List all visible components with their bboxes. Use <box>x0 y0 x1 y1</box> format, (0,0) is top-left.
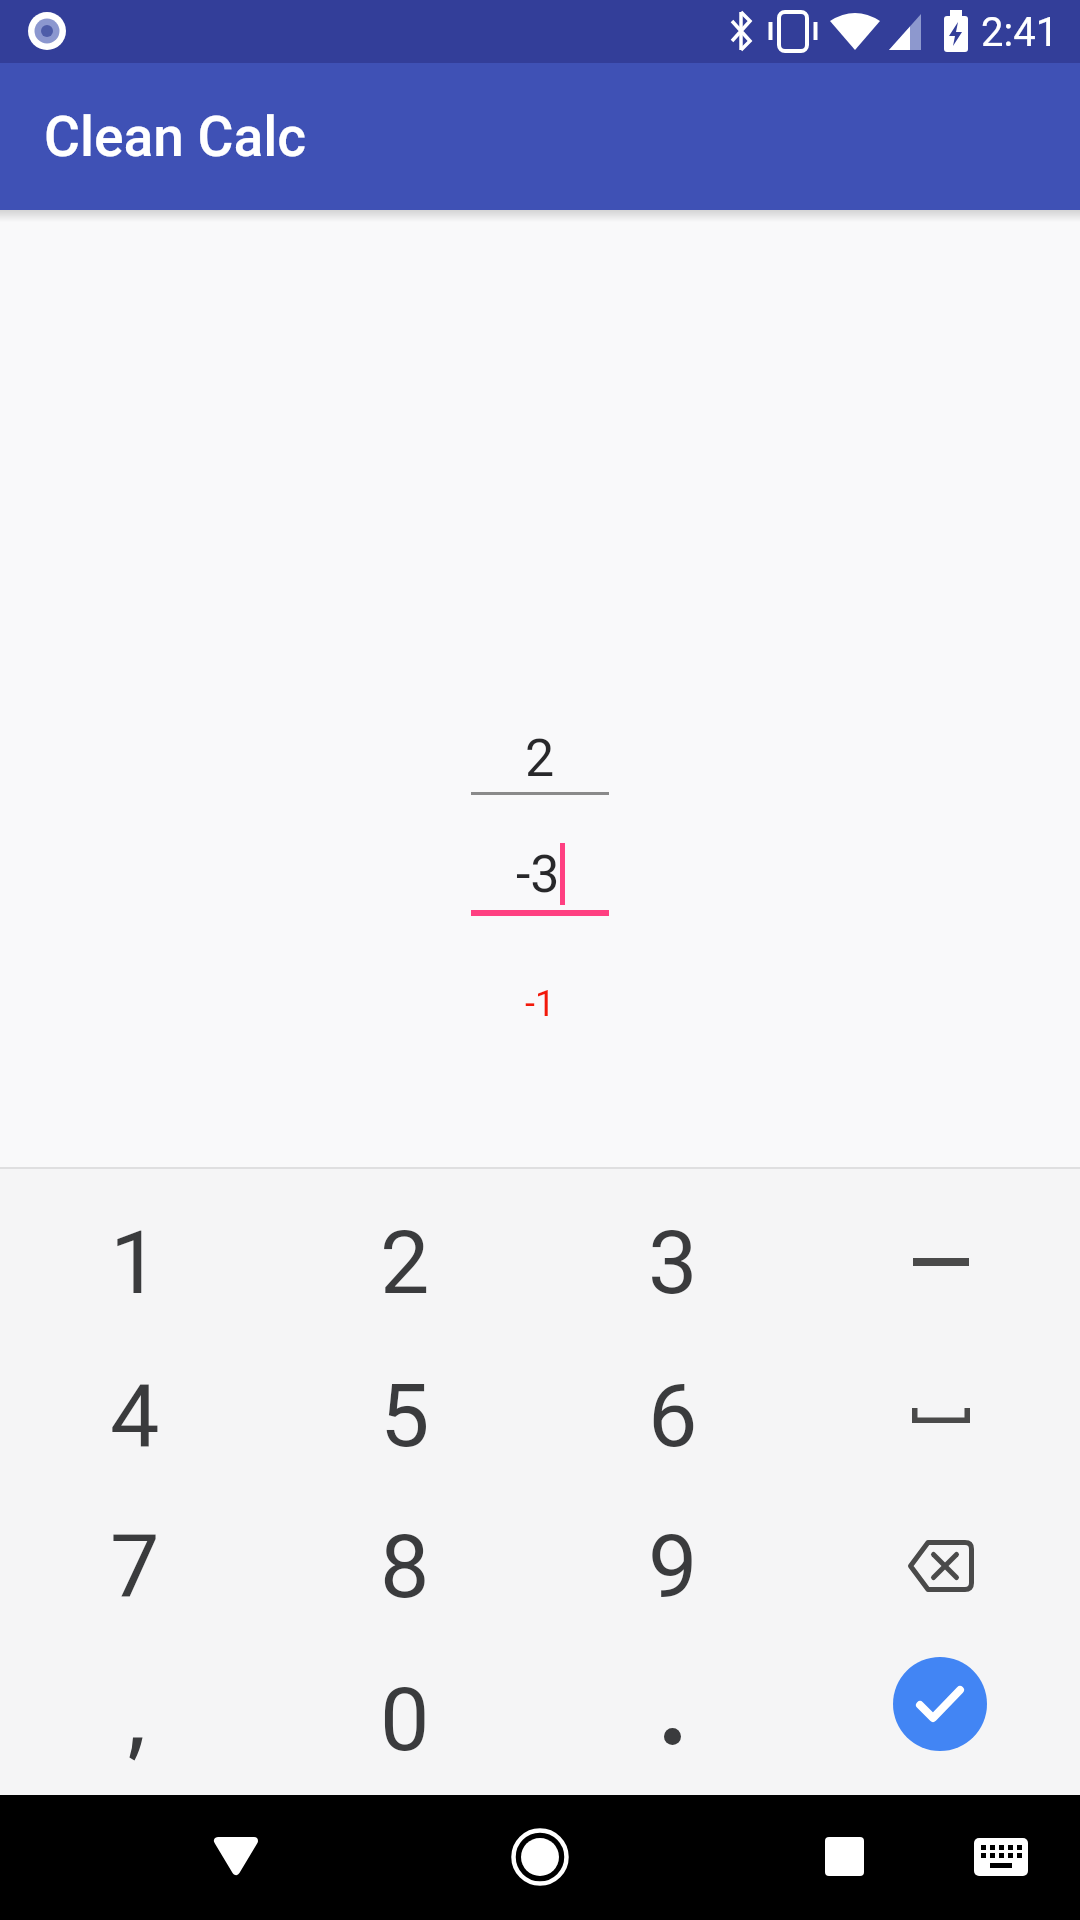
staticText: 5 <box>380 1364 430 1467</box>
staticText: 4 <box>110 1364 160 1467</box>
button[interactable]: 8 <box>270 1489 540 1643</box>
staticText: -1 <box>525 983 556 1023</box>
button[interactable] <box>806 1185 1076 1339</box>
button[interactable]: 9 <box>538 1489 808 1643</box>
staticText: 8 <box>380 1515 430 1618</box>
button[interactable]: 2 <box>270 1185 540 1339</box>
button[interactable] <box>804 1816 884 1896</box>
button[interactable] <box>806 1489 1076 1643</box>
button[interactable] <box>806 1338 1076 1492</box>
button[interactable]: -3 <box>471 842 609 906</box>
button[interactable]: 5 <box>270 1338 540 1492</box>
button[interactable] <box>196 1816 276 1896</box>
staticText: 2 <box>525 728 555 789</box>
button[interactable]: 1 <box>0 1185 270 1339</box>
staticText: Clean Calc <box>44 105 307 169</box>
button[interactable]: 7 <box>0 1489 270 1643</box>
staticText: 0 <box>380 1668 430 1771</box>
button[interactable] <box>893 1657 987 1751</box>
button[interactable] <box>500 1817 580 1897</box>
button[interactable]: 3 <box>538 1185 808 1339</box>
staticText: 9 <box>648 1515 698 1618</box>
button[interactable] <box>0 1642 270 1796</box>
staticText: 2:41 <box>981 9 1059 56</box>
button[interactable] <box>961 1817 1041 1897</box>
staticText: 7 <box>110 1515 160 1618</box>
staticText: -3 <box>516 844 560 905</box>
staticText: 6 <box>648 1364 698 1467</box>
button[interactable]: 6 <box>538 1338 808 1492</box>
staticText: 3 <box>648 1211 698 1314</box>
button[interactable]: 2 <box>471 727 609 789</box>
button[interactable]: 4 <box>0 1338 270 1492</box>
staticText: 2 <box>380 1211 430 1314</box>
staticText: 1 <box>110 1211 160 1314</box>
button[interactable]: 0 <box>270 1642 540 1796</box>
button[interactable] <box>538 1642 808 1796</box>
